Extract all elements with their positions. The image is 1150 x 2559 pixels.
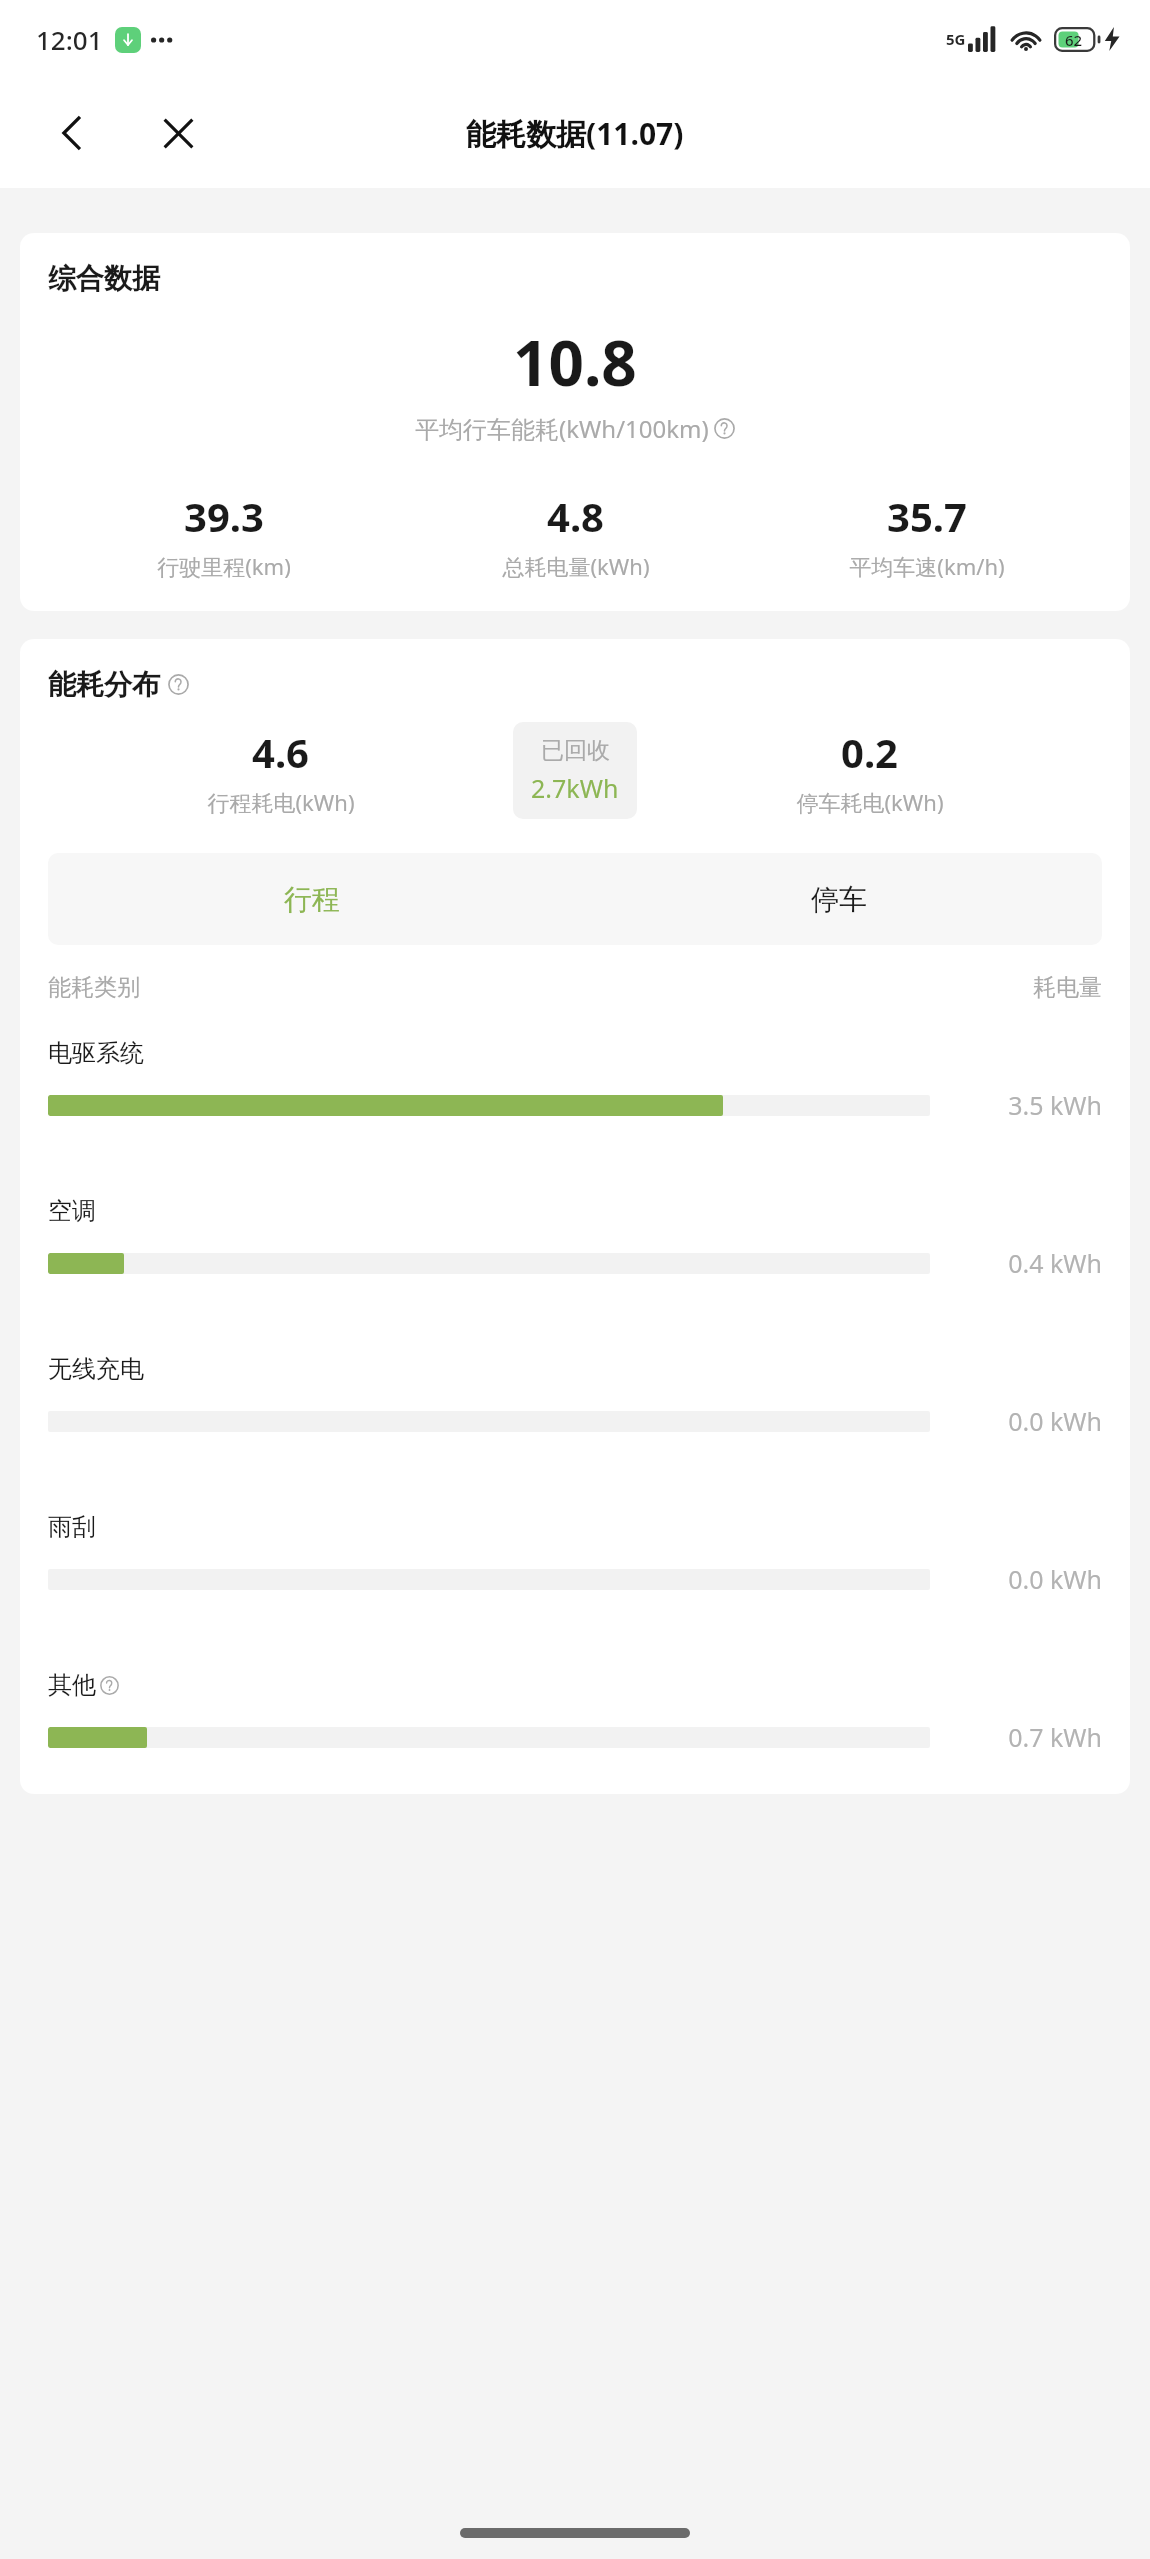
button[interactable]: 空调 bbox=[48, 1196, 1102, 1280]
staticText: 平均行车能耗(kWh/100km) bbox=[415, 412, 709, 445]
staticText: 0.0 kWh bbox=[960, 1562, 1102, 1596]
staticText: 0.0 kWh bbox=[960, 1404, 1102, 1438]
staticText: 总耗电量(kWh) bbox=[502, 551, 650, 581]
button[interactable]: 行程 bbox=[48, 853, 575, 945]
button[interactable]: 无线充电 bbox=[48, 1354, 1102, 1438]
staticText: 能耗类别 bbox=[48, 973, 140, 1002]
staticText: 已回收 bbox=[541, 736, 610, 765]
staticText: 35.7 bbox=[887, 489, 967, 543]
staticText: 12:01 bbox=[36, 22, 103, 57]
staticText: 0.2 bbox=[841, 725, 898, 779]
staticText: 空调 bbox=[48, 1196, 96, 1226]
staticText: 电驱系统 bbox=[48, 1038, 144, 1068]
button[interactable]: 电驱系统 bbox=[48, 1038, 1102, 1122]
staticText: 2.7kWh bbox=[531, 771, 619, 805]
button[interactable]: 雨刮 bbox=[48, 1512, 1102, 1596]
staticText: 能耗数据(11.07) bbox=[466, 113, 684, 154]
button[interactable]: Close bbox=[150, 105, 206, 161]
button[interactable]: Back bbox=[44, 105, 100, 161]
staticText: 其他 bbox=[48, 1670, 96, 1700]
staticText: 无线充电 bbox=[48, 1354, 144, 1384]
staticText: 4.6 bbox=[252, 725, 309, 779]
staticText: 62 bbox=[1065, 30, 1083, 50]
staticText: 停车耗电(kWh) bbox=[796, 787, 944, 817]
staticText: 耗电量 bbox=[1033, 973, 1102, 1002]
staticText: 能耗分布 bbox=[48, 667, 160, 702]
staticText: 行程耗电(kWh) bbox=[207, 787, 355, 817]
staticText: 0.7 kWh bbox=[960, 1720, 1102, 1754]
button[interactable]: 其他 bbox=[48, 1670, 1102, 1754]
staticText: 39.3 bbox=[184, 489, 264, 543]
staticText: 0.4 kWh bbox=[960, 1246, 1102, 1280]
staticText: 平均车速(km/h) bbox=[849, 551, 1005, 581]
button[interactable]: 停车 bbox=[575, 853, 1102, 945]
staticText: 3.5 kWh bbox=[960, 1088, 1102, 1122]
staticText: 5G bbox=[946, 29, 966, 49]
staticText: 4.8 bbox=[547, 489, 604, 543]
staticText: 行驶里程(km) bbox=[157, 551, 291, 581]
staticText: 行程 bbox=[284, 882, 340, 917]
staticText: 综合数据 bbox=[48, 261, 160, 296]
staticText: 10.8 bbox=[513, 320, 637, 404]
staticText: 雨刮 bbox=[48, 1512, 96, 1542]
staticText: 停车 bbox=[811, 882, 867, 917]
